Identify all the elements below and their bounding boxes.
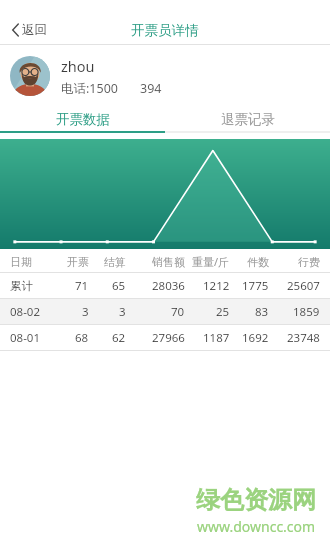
staticText: 结算 bbox=[104, 255, 126, 269]
button[interactable]: 返回 bbox=[6, 18, 53, 42]
button[interactable]: 08-02 bbox=[0, 299, 330, 324]
staticText: 27966 bbox=[152, 330, 185, 346]
staticText: 绿色资源网 bbox=[196, 485, 316, 515]
staticText: 行费 bbox=[298, 255, 320, 269]
staticText: 1212 bbox=[203, 278, 230, 294]
staticText: 65 bbox=[112, 278, 126, 294]
staticText: 日期 bbox=[10, 255, 32, 269]
staticText: 70 bbox=[171, 304, 185, 320]
staticText: 71 bbox=[75, 278, 89, 294]
staticText: 退票记录 bbox=[221, 111, 275, 128]
button[interactable]: 08-01 bbox=[0, 325, 330, 350]
button[interactable]: 累计 bbox=[0, 273, 330, 298]
staticText: 68 bbox=[75, 330, 89, 346]
staticText: 1775 bbox=[242, 278, 269, 294]
staticText: 28036 bbox=[152, 278, 185, 294]
staticText: 25607 bbox=[287, 278, 320, 294]
staticText: 返回 bbox=[22, 22, 47, 38]
staticText: 23748 bbox=[287, 330, 320, 346]
staticText: 08-02 bbox=[10, 304, 41, 320]
staticText: 1187 bbox=[203, 330, 230, 346]
button[interactable]: 开票数据 bbox=[0, 107, 165, 131]
staticText: 电话:1500 bbox=[61, 80, 118, 97]
staticText: 3 bbox=[82, 304, 89, 320]
button[interactable]: 退票记录 bbox=[165, 107, 330, 131]
staticText: 1692 bbox=[242, 330, 269, 346]
staticText: 开票 bbox=[67, 255, 89, 269]
staticText: 394 bbox=[140, 80, 162, 97]
staticText: 62 bbox=[112, 330, 126, 346]
button[interactable]: zhou bbox=[0, 45, 330, 107]
staticText: zhou bbox=[61, 56, 95, 76]
staticText: 开票员详情 bbox=[131, 22, 199, 39]
staticText: 重量/斤 bbox=[192, 254, 230, 269]
staticText: 件数 bbox=[247, 255, 269, 269]
staticText: 83 bbox=[255, 304, 269, 320]
staticText: 销售额 bbox=[152, 255, 185, 269]
staticText: www.downcc.com bbox=[197, 517, 316, 536]
staticText: 08-01 bbox=[10, 330, 41, 346]
staticText: 3 bbox=[119, 304, 126, 320]
staticText: 开票数据 bbox=[56, 111, 110, 128]
staticText: 累计 bbox=[10, 279, 33, 293]
staticText: 1859 bbox=[293, 304, 320, 320]
staticText: 25 bbox=[216, 304, 230, 320]
